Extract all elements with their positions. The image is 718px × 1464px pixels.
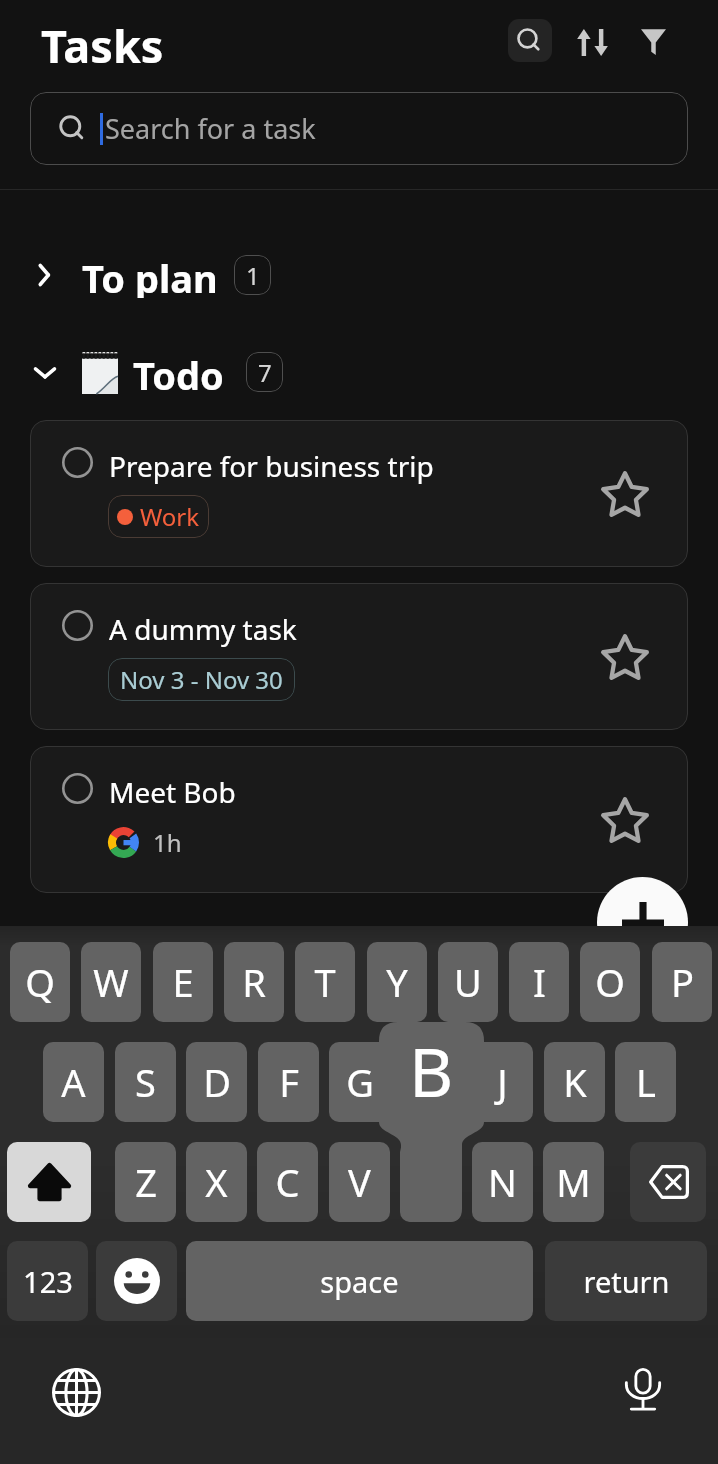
staticText: S	[135, 1056, 156, 1108]
button[interactable]: P	[652, 942, 712, 1022]
button[interactable]: Y	[367, 942, 427, 1022]
button[interactable]: Voice input	[617, 1362, 669, 1414]
button[interactable]: Search	[508, 19, 552, 62]
staticText: J	[497, 1056, 508, 1108]
staticText: L	[636, 1056, 656, 1108]
staticText: 1	[246, 259, 260, 292]
button[interactable]: U	[438, 942, 498, 1022]
button[interactable]: To plan	[28, 252, 271, 298]
staticText: Z	[135, 1156, 157, 1208]
staticText: X	[205, 1156, 228, 1208]
staticText: To plan	[82, 252, 218, 298]
button[interactable]: Prepare for business trip	[30, 420, 688, 567]
staticText: G	[346, 1056, 374, 1108]
button[interactable]: R	[224, 942, 284, 1022]
button[interactable]: J	[472, 1042, 533, 1122]
button[interactable]: Z	[115, 1142, 176, 1222]
staticText: P	[671, 956, 694, 1008]
button[interactable]: L	[615, 1042, 676, 1122]
staticText: Search for a task	[105, 110, 316, 147]
staticText: M	[556, 1156, 591, 1208]
button[interactable]: 123	[7, 1241, 88, 1321]
staticText: U	[454, 956, 482, 1008]
staticText: H	[417, 1056, 446, 1108]
staticText: 1h	[153, 826, 182, 859]
button[interactable]: T	[295, 942, 355, 1022]
staticText: Work	[140, 500, 200, 533]
staticText: 123	[23, 1262, 73, 1301]
staticText: F	[279, 1056, 299, 1108]
button[interactable]: N	[472, 1142, 533, 1222]
staticText: C	[275, 1156, 300, 1208]
staticText: B	[409, 1024, 454, 1117]
staticText: O	[595, 956, 625, 1008]
staticText: T	[314, 956, 336, 1008]
button[interactable]: K	[544, 1042, 605, 1122]
button[interactable]: Q	[10, 942, 70, 1022]
staticText: R	[242, 956, 266, 1008]
button[interactable]	[7, 1142, 91, 1222]
button[interactable]: B	[400, 1142, 461, 1222]
button[interactable]: space	[186, 1241, 533, 1321]
button[interactable]: E	[153, 942, 213, 1022]
button[interactable]: G	[329, 1042, 390, 1122]
button[interactable]: Meet Bob	[30, 746, 688, 893]
staticText: E	[172, 956, 194, 1008]
staticText: Q	[25, 956, 55, 1008]
staticText: Y	[386, 956, 408, 1008]
staticText: space	[320, 1262, 399, 1301]
button[interactable]: O	[580, 942, 640, 1022]
button[interactable]: W	[81, 942, 141, 1022]
button[interactable]: Add task	[597, 877, 688, 968]
button[interactable]: A dummy task	[30, 583, 688, 730]
button[interactable]: Todo	[28, 349, 283, 395]
button[interactable]: S	[115, 1042, 176, 1122]
button[interactable]: Filter	[629, 17, 677, 65]
button[interactable]: C	[257, 1142, 318, 1222]
staticText: K	[563, 1056, 587, 1108]
staticText: I	[533, 956, 546, 1008]
button[interactable]: I	[509, 942, 569, 1022]
button[interactable]: Favorite	[600, 633, 650, 683]
button[interactable]: H	[401, 1042, 462, 1122]
staticText: 7	[258, 356, 272, 389]
staticText: D	[203, 1056, 231, 1108]
staticText: W	[93, 956, 129, 1008]
staticText: Meet Bob	[109, 773, 236, 811]
staticText: Todo	[133, 349, 224, 395]
button[interactable]: return	[545, 1241, 707, 1321]
button[interactable]: M	[543, 1142, 604, 1222]
staticText: A	[61, 1056, 86, 1108]
staticText: Nov 3 - Nov 30	[120, 663, 283, 696]
staticText: N	[488, 1156, 517, 1208]
button[interactable]: D	[186, 1042, 247, 1122]
staticText: A dummy task	[109, 610, 297, 648]
button[interactable]: F	[258, 1042, 319, 1122]
button[interactable]	[630, 1142, 706, 1222]
button[interactable]: Search for a task	[30, 92, 688, 165]
button[interactable]: V	[329, 1142, 390, 1222]
button[interactable]: Favorite	[600, 470, 650, 520]
staticText: Prepare for business trip	[109, 447, 434, 485]
button[interactable]: Favorite	[600, 796, 650, 846]
staticText: V	[348, 1156, 371, 1208]
button[interactable]: A	[43, 1042, 104, 1122]
button[interactable]: X	[186, 1142, 247, 1222]
button[interactable]	[96, 1241, 177, 1321]
button[interactable]: Change keyboard	[52, 1368, 101, 1417]
staticText: Tasks	[41, 15, 164, 76]
button[interactable]: Sort	[568, 18, 616, 66]
staticText: return	[583, 1262, 670, 1301]
